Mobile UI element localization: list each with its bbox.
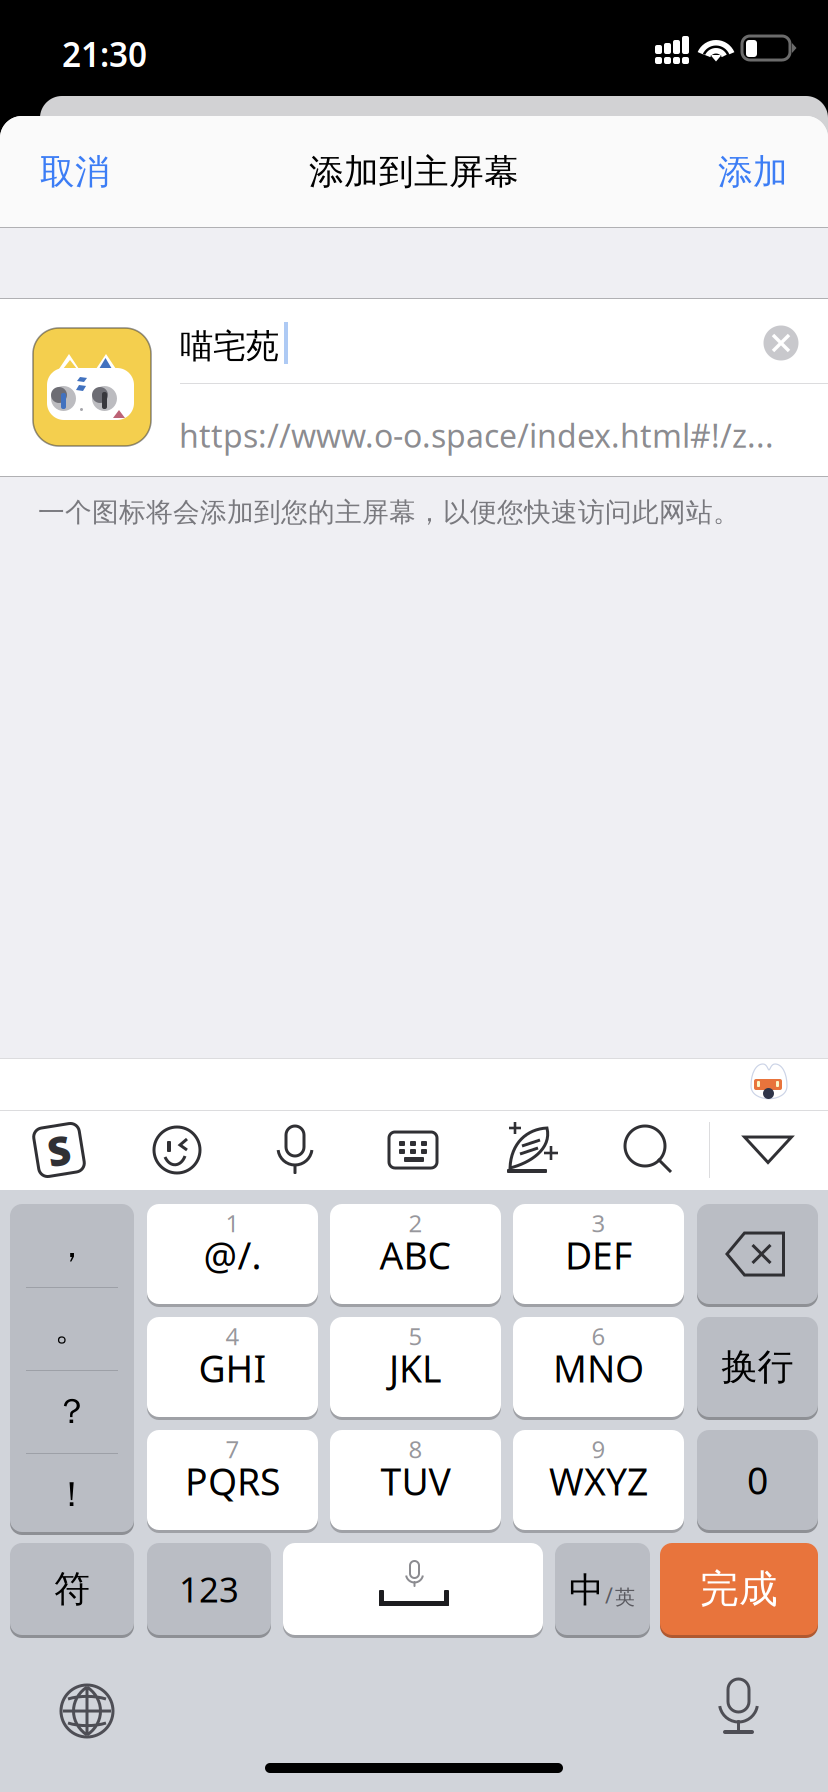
staticText: MNO [553, 1343, 644, 1393]
staticText: ！ [54, 1473, 89, 1516]
button[interactable]: ！ [10, 1453, 134, 1536]
button[interactable]: 8 [330, 1430, 501, 1533]
button[interactable]: 取消 [0, 116, 230, 228]
staticText: 添加到主屏幕 [309, 151, 519, 193]
staticText: 中 [569, 1569, 604, 1612]
staticText: S [47, 1123, 70, 1176]
button[interactable]: Numbers [147, 1543, 271, 1638]
button[interactable]: 4 [147, 1317, 318, 1420]
staticText: 换行 [721, 1345, 793, 1389]
button[interactable]: Symbols [10, 1543, 134, 1638]
staticText: 英 [615, 1585, 635, 1610]
button[interactable]: Handwriting [504, 1124, 558, 1176]
button[interactable]: 1 [147, 1204, 318, 1307]
staticText: ABC [379, 1230, 451, 1280]
staticText: 。 [54, 1307, 89, 1350]
button[interactable]: Sogou input method [33, 1123, 85, 1177]
staticText: @/. [203, 1230, 261, 1280]
staticText: WXYZ [549, 1456, 648, 1506]
staticText: TUV [380, 1456, 450, 1506]
button[interactable]: ， [10, 1204, 134, 1287]
staticText: DEF [565, 1230, 632, 1280]
button[interactable]: Hide keyboard [743, 1135, 793, 1164]
staticText: 123 [179, 1566, 239, 1612]
staticText: JKL [389, 1343, 442, 1393]
staticText: 5 [408, 1320, 422, 1352]
button[interactable]: 3 [513, 1204, 684, 1307]
button[interactable]: 。 [10, 1287, 134, 1370]
button[interactable]: Dictation [716, 1679, 762, 1737]
button[interactable]: Search [623, 1124, 675, 1176]
staticText: 1 [225, 1207, 239, 1239]
button[interactable]: 2 [330, 1204, 501, 1307]
button[interactable]: Clear text [749, 311, 813, 375]
button[interactable]: Return [697, 1317, 818, 1420]
staticText: GHI [198, 1343, 266, 1393]
button[interactable]: 9 [513, 1430, 684, 1533]
staticText: 9 [591, 1433, 605, 1465]
staticText: 8 [408, 1433, 422, 1465]
button[interactable]: 6 [513, 1317, 684, 1420]
staticText: PQRS [185, 1456, 280, 1506]
button[interactable]: Voice input [269, 1124, 321, 1176]
staticText: 21:30 [62, 32, 147, 76]
staticText: 喵宅苑 [180, 326, 279, 367]
staticText: 2 [408, 1207, 422, 1239]
staticText: ？ [54, 1390, 89, 1433]
button[interactable]: Switch keyboard [61, 1685, 113, 1737]
button[interactable]: 7 [147, 1430, 318, 1533]
button[interactable]: Keyboard layout [387, 1124, 439, 1176]
button[interactable]: 完成 [660, 1543, 818, 1638]
staticText: 4 [225, 1320, 239, 1352]
staticText: 完成 [700, 1565, 778, 1613]
staticText: 7 [225, 1433, 239, 1465]
staticText: 0 [747, 1455, 768, 1505]
staticText: ， [54, 1224, 89, 1267]
staticText: 3 [591, 1207, 605, 1239]
button[interactable]: ？ [10, 1370, 134, 1453]
staticText: https://www.o-o.space/index.html#!/z... [179, 414, 774, 456]
button[interactable]: Emoji [151, 1125, 203, 1175]
button[interactable]: Chinese English toggle [555, 1543, 650, 1638]
button[interactable]: Zero [697, 1430, 818, 1533]
staticText: 6 [591, 1320, 605, 1352]
staticText: 符 [54, 1567, 90, 1611]
button[interactable]: 添加 [598, 116, 828, 228]
staticText: / [605, 1581, 613, 1609]
button[interactable]: Space [283, 1543, 543, 1638]
staticText: 取消 [40, 151, 110, 193]
button[interactable]: Delete [697, 1204, 818, 1307]
button[interactable]: 5 [330, 1317, 501, 1420]
staticText: 一个图标将会添加到您的主屏幕，以便您快速访问此网站。 [38, 496, 740, 529]
staticText: 添加 [718, 151, 788, 193]
